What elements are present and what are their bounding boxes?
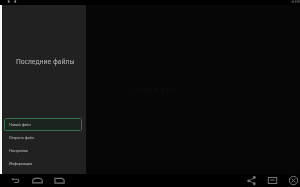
button[interactable]: Back [9, 174, 22, 187]
staticText: Новый файл [9, 122, 31, 127]
staticText: Открыть файл [9, 135, 34, 140]
staticText: Последние файлы [16, 57, 75, 66]
button[interactable]: Screenshot [266, 174, 279, 187]
button[interactable]: Новый файл [4, 118, 82, 131]
button[interactable]: Home [31, 174, 44, 187]
button[interactable]: Recents [53, 174, 66, 187]
button[interactable]: Информация [4, 157, 82, 170]
button[interactable]: Close [287, 174, 300, 187]
button[interactable]: Открыть файл [4, 131, 82, 144]
staticText: Настройки [9, 148, 28, 153]
button[interactable]: Настройки [4, 144, 82, 157]
staticText: Информация [9, 161, 33, 166]
button[interactable]: Share [245, 174, 258, 187]
